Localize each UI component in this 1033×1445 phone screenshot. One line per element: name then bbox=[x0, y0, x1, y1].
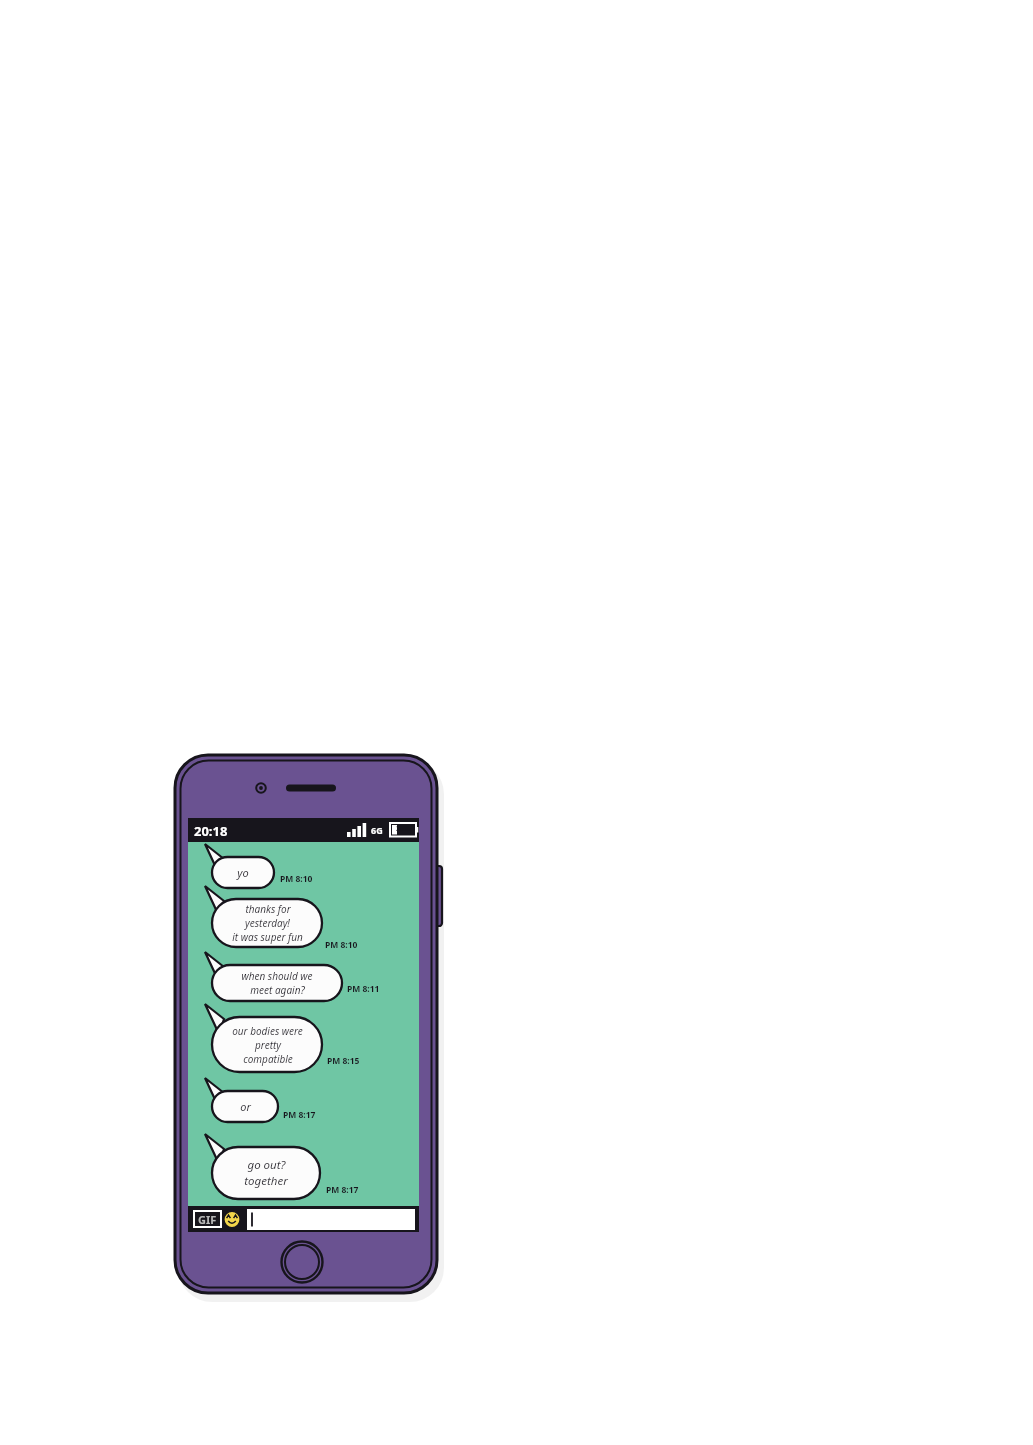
staticText: our bodies were bbox=[232, 1024, 303, 1038]
staticText: when should we bbox=[241, 969, 313, 983]
staticText: PM 8:17 bbox=[326, 1184, 359, 1196]
button[interactable]: when should we bbox=[212, 965, 342, 1001]
staticText: or bbox=[240, 1099, 251, 1114]
button[interactable]: our bodies were bbox=[212, 1017, 322, 1072]
staticText: 6G bbox=[371, 824, 383, 836]
staticText: PM 8:10 bbox=[325, 939, 358, 951]
button[interactable]: Emoji picker bbox=[224, 1211, 241, 1228]
staticText: it was super fun bbox=[232, 930, 303, 944]
staticText: PM 8:15 bbox=[327, 1055, 360, 1067]
staticText: pretty bbox=[255, 1038, 281, 1052]
staticText: go out? bbox=[247, 1157, 286, 1173]
staticText: together bbox=[244, 1173, 288, 1189]
button[interactable]: go out? bbox=[212, 1147, 320, 1199]
staticText: thanks for bbox=[245, 902, 291, 916]
button[interactable]: or bbox=[212, 1091, 278, 1122]
staticText: compatible bbox=[243, 1052, 293, 1066]
button[interactable]: Message input field bbox=[247, 1209, 415, 1230]
button[interactable]: yo bbox=[212, 857, 274, 888]
staticText: GIF bbox=[198, 1212, 217, 1227]
staticText: PM 8:10 bbox=[280, 873, 313, 885]
staticText: PM 8:17 bbox=[283, 1109, 316, 1121]
staticText: yo bbox=[237, 865, 249, 880]
button[interactable]: Send GIF bbox=[194, 1211, 221, 1227]
staticText: yesterday! bbox=[245, 916, 290, 930]
staticText: meet again? bbox=[250, 983, 305, 997]
staticText: 20:18 bbox=[194, 822, 228, 840]
button[interactable]: thanks for bbox=[212, 899, 322, 947]
staticText: PM 8:11 bbox=[347, 983, 380, 995]
button[interactable]: Clock 20:18 bbox=[194, 820, 248, 842]
button[interactable]: Home button bbox=[281, 1241, 323, 1283]
staticText: 20% bbox=[396, 824, 411, 834]
